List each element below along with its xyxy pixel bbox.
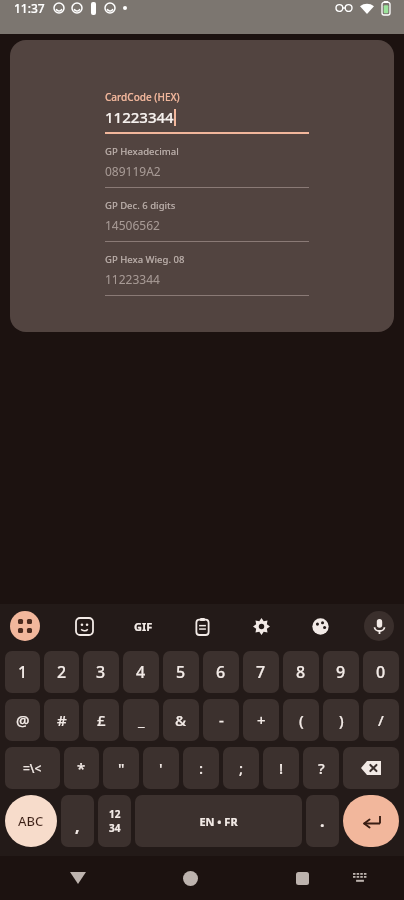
staticText: 7: [256, 661, 266, 683]
button[interactable]: Recents: [285, 861, 319, 895]
button[interactable]: Enter: [343, 795, 399, 847]
button[interactable]: Keyboard menu: [10, 611, 40, 641]
staticText: 11:37: [14, 0, 45, 16]
staticText: GP Hexadecimal: [105, 145, 179, 158]
button[interactable]: @: [5, 699, 40, 741]
staticText: =\<: [23, 760, 42, 776]
staticText: !: [279, 758, 284, 778]
button[interactable]: ': [143, 747, 179, 789]
button[interactable]: 3: [83, 651, 119, 693]
staticText: -: [219, 710, 224, 730]
staticText: @: [16, 710, 30, 730]
button[interactable]: 0: [363, 651, 399, 693]
staticText: :: [199, 758, 204, 778]
button[interactable]: GIF: [128, 611, 158, 641]
staticText: ': [159, 758, 163, 778]
staticText: GP Hexa Wieg. 08: [105, 253, 185, 266]
button[interactable]: 8: [283, 651, 319, 693]
button[interactable]: 9: [323, 651, 359, 693]
button[interactable]: Settings: [246, 611, 276, 641]
staticText: 0: [376, 661, 386, 683]
staticText: ;: [239, 758, 244, 778]
staticText: 3: [96, 661, 106, 683]
staticText: ?: [318, 758, 325, 778]
staticText: 9: [336, 661, 346, 683]
staticText: £: [97, 710, 106, 730]
button[interactable]: Back: [61, 861, 95, 895]
button[interactable]: GP Dec. 6 digits: [105, 188, 309, 242]
staticText: 5: [176, 661, 186, 683]
staticText: GP Dec. 6 digits: [105, 199, 176, 212]
button[interactable]: -: [203, 699, 239, 741]
staticText: 8: [296, 661, 306, 683]
button[interactable]: Clipboard: [187, 611, 217, 641]
staticText: EN • FR: [199, 814, 238, 829]
button[interactable]: _: [123, 699, 159, 741]
button[interactable]: +: [243, 699, 279, 741]
button[interactable]: ?: [303, 747, 339, 789]
button[interactable]: Numbers: [98, 795, 131, 847]
staticText: 14506562: [105, 217, 160, 233]
staticText: 6: [216, 661, 226, 683]
button[interactable]: Backspace: [343, 747, 399, 789]
staticText: (: [299, 710, 304, 730]
staticText: .: [320, 810, 325, 832]
button[interactable]: 1: [5, 651, 40, 693]
button[interactable]: Theme: [305, 611, 335, 641]
button[interactable]: ,: [61, 795, 94, 847]
button[interactable]: GP Hexadecimal: [105, 134, 309, 188]
staticText: GIF: [134, 619, 153, 634]
staticText: ,: [75, 815, 80, 837]
button[interactable]: ;: [223, 747, 259, 789]
button[interactable]: 5: [163, 651, 199, 693]
button[interactable]: &: [163, 699, 199, 741]
staticText: 2: [57, 661, 67, 683]
button[interactable]: Voice input: [364, 611, 394, 641]
button[interactable]: 4: [123, 651, 159, 693]
button[interactable]: Stickers: [69, 611, 99, 641]
staticText: CardCode (HEX): [105, 90, 180, 104]
button[interactable]: Home: [173, 861, 207, 895]
button[interactable]: ): [323, 699, 359, 741]
button[interactable]: 2: [44, 651, 79, 693]
staticText: 12: [109, 807, 121, 821]
staticText: 089119A2: [105, 163, 161, 179]
button[interactable]: /: [363, 699, 399, 741]
staticText: ABC: [18, 812, 44, 830]
staticText: _: [138, 710, 145, 730]
staticText: 34: [109, 821, 121, 835]
staticText: ): [339, 710, 344, 730]
staticText: 11223344: [105, 271, 160, 287]
button[interactable]: £: [83, 699, 119, 741]
staticText: 11223344: [105, 107, 174, 127]
button[interactable]: Switch keyboard: [345, 863, 375, 893]
button[interactable]: !: [263, 747, 299, 789]
button[interactable]: EN • FR: [135, 795, 302, 847]
staticText: 1: [18, 661, 28, 683]
button[interactable]: 7: [243, 651, 279, 693]
button[interactable]: ABC: [5, 795, 57, 847]
button[interactable]: ": [103, 747, 139, 789]
staticText: 4: [136, 661, 146, 683]
staticText: &: [175, 710, 187, 730]
staticText: +: [257, 710, 266, 730]
button[interactable]: .: [306, 795, 339, 847]
staticText: #: [57, 710, 67, 730]
button[interactable]: :: [183, 747, 219, 789]
staticText: ": [118, 758, 125, 778]
button[interactable]: *: [64, 747, 99, 789]
button[interactable]: =\<: [5, 747, 60, 789]
button[interactable]: 6: [203, 651, 239, 693]
button[interactable]: (: [283, 699, 319, 741]
staticText: *: [77, 758, 86, 778]
button[interactable]: #: [44, 699, 79, 741]
staticText: /: [378, 710, 384, 730]
button[interactable]: GP Hexa Wieg. 08: [105, 242, 309, 296]
